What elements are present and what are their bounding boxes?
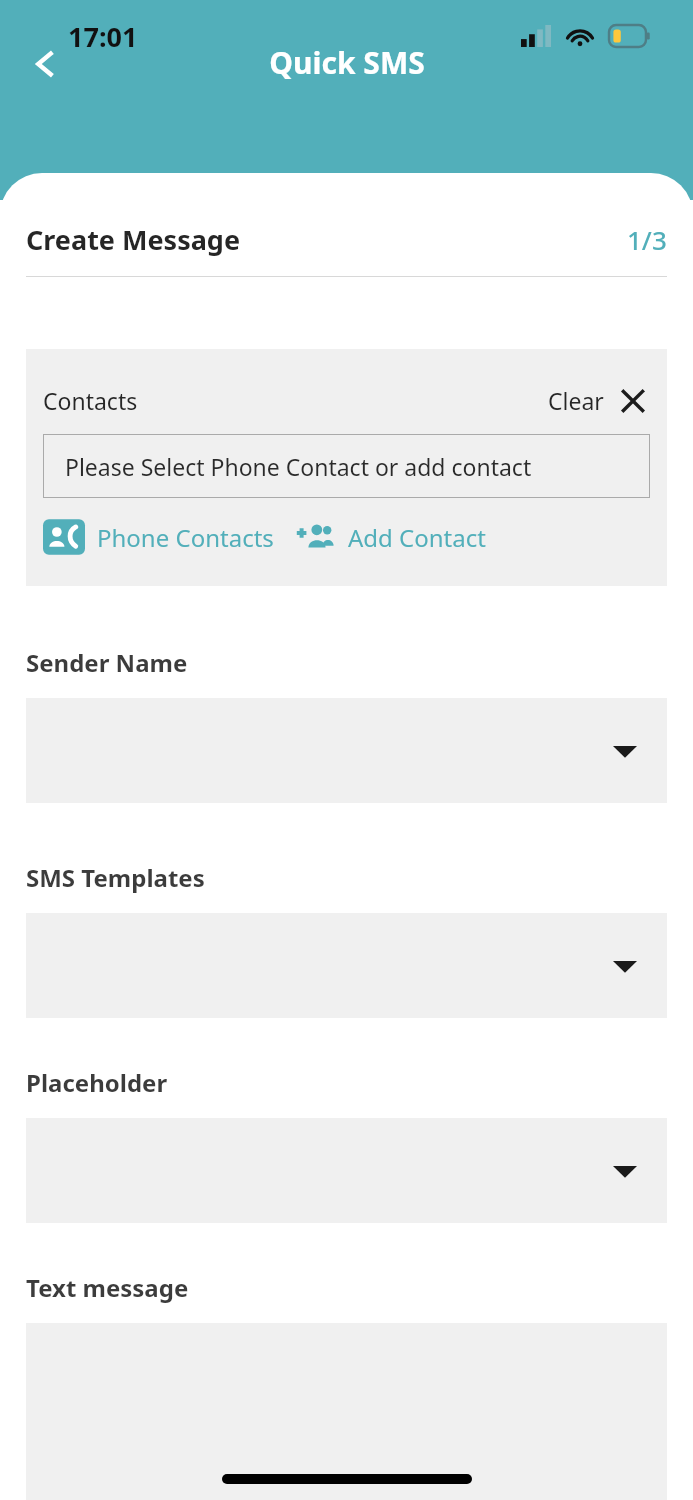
staticText: SMS Templates [26,861,205,894]
button[interactable] [26,1323,667,1500]
button[interactable]: Back [16,35,74,93]
button[interactable]: SMS Templates [26,913,667,1018]
staticText: Clear [548,385,604,416]
staticText: 1/3 [627,222,667,257]
button[interactable]: Clear [544,383,650,418]
staticText: Create Message [26,221,241,258]
button[interactable]: Placeholder [26,1118,667,1223]
button[interactable]: Phone Contacts [43,516,274,558]
staticText: Phone Contacts [97,521,274,554]
button[interactable]: Add Contact [296,517,486,557]
staticText: 17:01 [68,18,138,55]
staticText: Text message [26,1271,189,1304]
staticText: Please Select Phone Contact or add conta… [65,451,532,482]
staticText: Add Contact [348,521,486,554]
staticText: Placeholder [26,1066,168,1099]
button[interactable]: Please Select Phone Contact or add conta… [43,434,650,498]
staticText: Contacts [43,385,138,416]
staticText: Sender Name [26,646,188,679]
button[interactable]: Sender Name [26,698,667,803]
staticText: Quick SMS [269,42,425,83]
